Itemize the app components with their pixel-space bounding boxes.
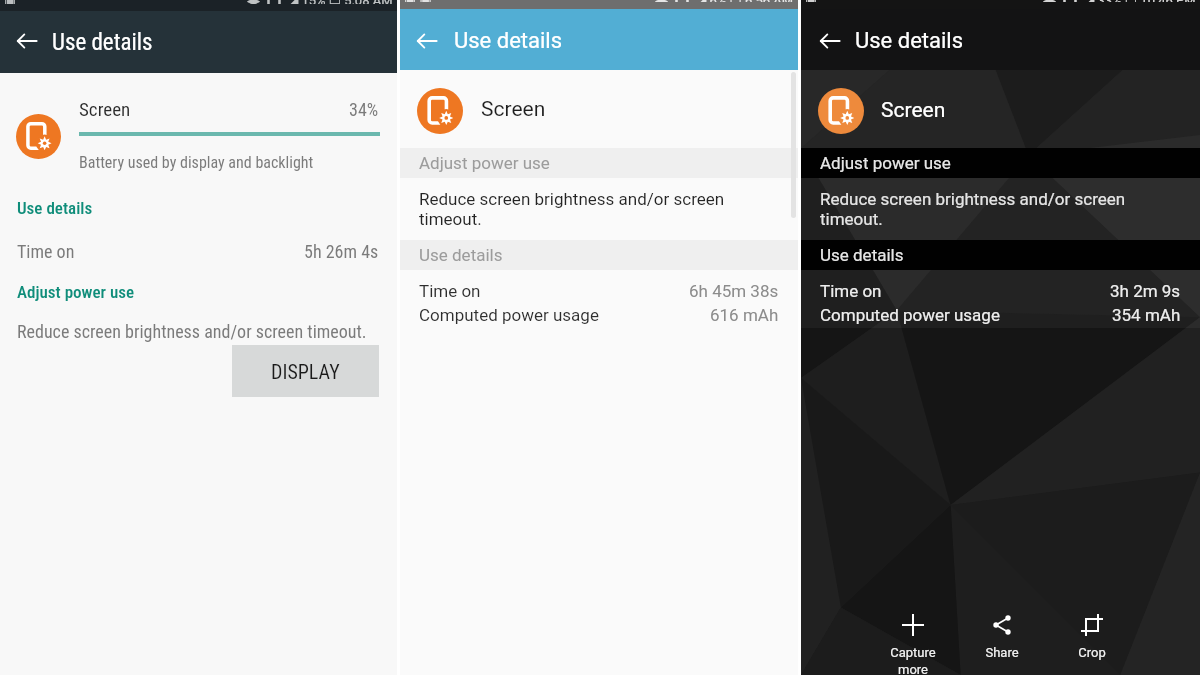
staticText: Computed power usage <box>419 305 599 325</box>
staticText: Screen <box>881 98 946 123</box>
staticText: Use details <box>820 245 904 265</box>
staticText: Capture more <box>890 645 936 675</box>
staticText: Adjust power use <box>17 282 135 302</box>
staticText: 34% <box>349 99 379 120</box>
staticText: 6h 45m 38s <box>689 281 779 301</box>
staticText: ◂▸ ❙❙ ◢ 15% ▭ 5:08 AM <box>247 0 393 4</box>
staticText: ▣ ▣ <box>404 0 436 2</box>
staticText: Battery used by display and backlight <box>79 153 314 172</box>
staticText: 3h 2m 9s <box>1110 281 1181 301</box>
staticText: ▣ <box>805 0 821 2</box>
button[interactable]: Back <box>409 23 444 58</box>
button[interactable]: Crop <box>1063 612 1121 660</box>
staticText: ◂▸ ❙❙ ◢ 33% ▭ 10:46 PM <box>1043 0 1196 2</box>
button[interactable]: Back <box>10 24 44 58</box>
staticText: Share <box>985 645 1019 660</box>
staticText: Screen <box>79 98 131 120</box>
staticText: 5h 26m 4s <box>304 241 379 262</box>
staticText: Use details <box>855 28 964 54</box>
staticText: Adjust power use <box>820 153 951 173</box>
button[interactable]: Capture more <box>884 612 942 675</box>
staticText: Reduce screen brightness and/or screen t… <box>820 189 1126 229</box>
staticText: Use details <box>17 198 93 218</box>
staticText: DISPLAY <box>271 360 340 383</box>
staticText: ◂▸ ❙❙ ◢ 6% ▭ 6:56 AM <box>655 0 794 2</box>
button[interactable]: Back <box>812 23 847 58</box>
staticText: Time on <box>419 281 481 301</box>
staticText: 354 mAh <box>1112 305 1181 325</box>
staticText: Crop <box>1078 645 1106 660</box>
staticText: Reduce screen brightness and/or screen t… <box>419 189 725 229</box>
staticText: ▣ <box>4 0 20 4</box>
staticText: Screen <box>481 97 546 122</box>
button[interactable]: DISPLAY <box>232 345 379 397</box>
button[interactable]: Share <box>973 612 1031 660</box>
staticText: Time on <box>17 241 75 262</box>
staticText: Use details <box>454 28 563 54</box>
staticText: 616 mAh <box>710 305 779 325</box>
staticText: Use details <box>52 29 153 56</box>
staticText: Adjust power use <box>419 153 550 173</box>
staticText: Time on <box>820 281 882 301</box>
staticText: Computed power usage <box>820 305 1000 325</box>
staticText: Reduce screen brightness and/or screen t… <box>17 321 367 342</box>
staticText: Use details <box>419 245 503 265</box>
